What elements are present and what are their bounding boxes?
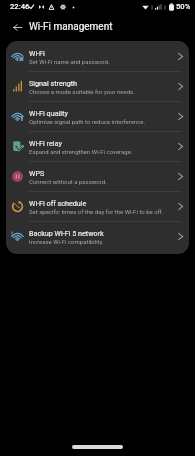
button[interactable]: WPS bbox=[6, 161, 189, 191]
staticText: Wi-Fi management bbox=[29, 21, 113, 33]
staticText: Wi-Fi quality bbox=[29, 109, 68, 117]
staticText: Increase Wi-Fi compatibility. bbox=[29, 238, 104, 245]
staticText: Backup Wi-Fi 5 network bbox=[29, 229, 104, 237]
staticText: Set specific times of the day for the Wi… bbox=[29, 208, 164, 215]
staticText: Choose a mode suitable for your needs. bbox=[29, 88, 135, 95]
staticText: Optimize signal path to reduce interfere… bbox=[29, 118, 146, 125]
button[interactable]: Backup Wi-Fi 5 network bbox=[6, 221, 189, 251]
button[interactable]: Wi-Fi relay bbox=[6, 131, 189, 161]
staticText: Set Wi-Fi name and password. bbox=[29, 58, 110, 65]
staticText: Expand and strengthen Wi-Fi coverage. bbox=[29, 148, 133, 155]
staticText: 22:46 bbox=[10, 2, 30, 11]
button[interactable]: Wi-Fi off schedule bbox=[6, 191, 189, 221]
staticText: Connect without a password. bbox=[29, 178, 107, 185]
staticText: 50% bbox=[176, 2, 191, 11]
staticText: Wi-Fi relay bbox=[29, 139, 62, 147]
staticText: Signal strength bbox=[29, 79, 78, 87]
button[interactable]: Wi-Fi bbox=[6, 41, 189, 71]
staticText: WPS bbox=[29, 169, 45, 177]
staticText: Wi-Fi bbox=[29, 49, 45, 57]
button[interactable]: Signal strength bbox=[6, 71, 189, 101]
staticText: Wi-Fi off schedule bbox=[29, 199, 87, 207]
button[interactable]: Wi-Fi quality bbox=[6, 101, 189, 131]
button[interactable]: Back bbox=[5, 15, 29, 39]
